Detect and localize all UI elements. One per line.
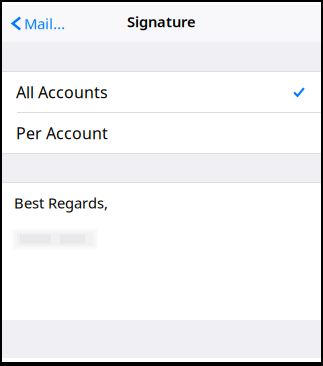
staticText: Best Regards, <box>14 193 108 212</box>
button[interactable]: Per Account <box>2 113 321 153</box>
staticText: Mail... <box>24 14 65 33</box>
staticText: Per Account <box>16 122 108 144</box>
button[interactable]: Mail... <box>2 5 75 42</box>
staticText: All Accounts <box>16 81 108 103</box>
staticText: Signature <box>127 12 196 31</box>
button[interactable]: All Accounts <box>2 72 321 112</box>
